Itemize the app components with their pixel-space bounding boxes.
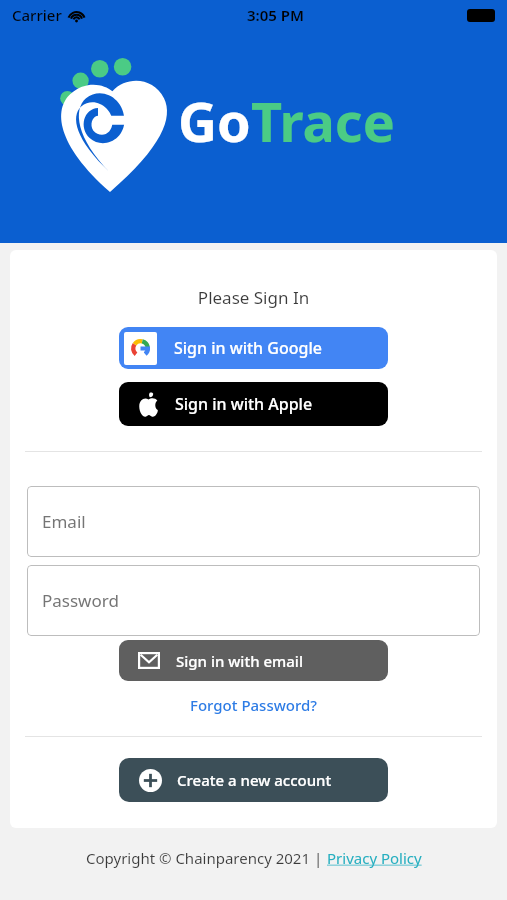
staticText: 3:05 PM	[247, 5, 304, 25]
staticText: Please Sign In	[10, 286, 497, 309]
button[interactable]: Sign in with Apple	[119, 382, 388, 426]
staticText: Trace	[251, 84, 395, 158]
staticText: Sign in with Apple	[175, 393, 313, 415]
staticText: Carrier	[12, 5, 62, 25]
button[interactable]: Create a new account	[119, 758, 388, 802]
button[interactable]: Forgot Password?	[184, 693, 324, 717]
staticText: Sign in with Google	[174, 337, 322, 359]
staticText: Sign in with email	[176, 651, 303, 671]
staticText: Create a new account	[177, 770, 332, 790]
button[interactable]: Sign in with Google	[119, 327, 388, 369]
button[interactable]: Privacy Policy	[327, 848, 422, 868]
button[interactable]: Email	[27, 486, 480, 557]
staticText: Email	[42, 510, 86, 533]
button[interactable]: Sign in with email	[119, 640, 388, 681]
staticText: Copyright © Chainparency 2021 |	[86, 848, 327, 868]
staticText: Password	[42, 589, 119, 612]
staticText: Go	[178, 84, 251, 158]
button[interactable]: Password	[27, 565, 480, 636]
